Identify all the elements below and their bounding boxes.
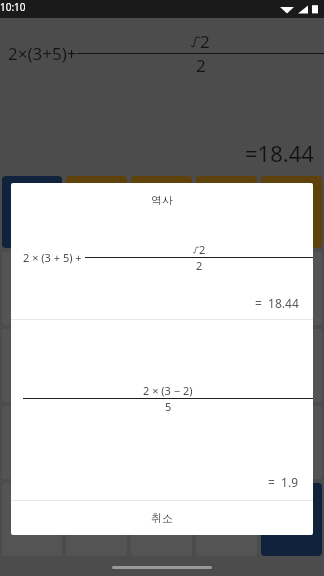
button[interactable]: −: [261, 329, 322, 402]
staticText: ): [159, 201, 164, 223]
button[interactable]: ÷: [261, 176, 322, 248]
button[interactable]: Rotate layout: [2, 483, 62, 556]
button[interactable]: 2: [131, 406, 192, 479]
button[interactable]: 7: [66, 252, 127, 325]
staticText: 5: [165, 399, 172, 414]
button[interactable]: (: [66, 176, 127, 248]
button[interactable]: ln: [2, 329, 62, 402]
staticText: =18.44: [245, 138, 314, 168]
staticText: 2: [200, 30, 210, 53]
button[interactable]: 4: [66, 329, 127, 402]
button[interactable]: Ans: [66, 483, 127, 556]
staticText: 2×(3+5)+: [8, 42, 77, 65]
button[interactable]: e: [2, 406, 62, 479]
staticText: ×: [287, 278, 297, 300]
button[interactable]: ): [131, 176, 192, 248]
staticText: 2: [199, 242, 206, 257]
button[interactable]: ×: [261, 252, 322, 325]
staticText: = 1.9: [268, 474, 299, 490]
staticText: 2: [196, 54, 206, 77]
button[interactable]: 5: [131, 329, 192, 402]
button[interactable]: %: [196, 176, 257, 248]
staticText: 10:10: [0, 0, 26, 14]
button[interactable]: 8: [131, 252, 192, 325]
staticText: 2: [196, 258, 203, 273]
button[interactable]: 0: [131, 483, 192, 556]
staticText: 2 × (3 + 5) +: [23, 250, 85, 265]
staticText: = 18.44: [255, 295, 299, 311]
button[interactable]: +: [261, 406, 322, 479]
button[interactable]: 9: [196, 252, 257, 325]
button[interactable]: 취소: [11, 501, 313, 535]
staticText: 역사: [151, 193, 173, 207]
button[interactable]: 6: [196, 329, 257, 402]
staticText: 2 × (3 − 2): [143, 383, 193, 398]
button[interactable]: .: [196, 483, 257, 556]
button[interactable]: =: [261, 483, 322, 556]
button[interactable]: sin: [2, 176, 62, 248]
staticText: 0: [157, 509, 167, 531]
button[interactable]: log: [2, 252, 62, 325]
staticText: 취소: [151, 511, 173, 525]
